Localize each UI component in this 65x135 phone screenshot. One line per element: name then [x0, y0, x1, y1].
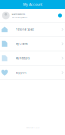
staticText: Personal Space	[15, 28, 33, 31]
staticText: My Claims	[15, 42, 27, 46]
staticText: My Receipts	[15, 56, 29, 60]
button[interactable]: My Receipts	[0, 51, 65, 65]
staticText: Support	[15, 71, 26, 74]
staticText: version 1.0.0	[26, 126, 39, 129]
button[interactable]: Personal Space	[0, 22, 65, 36]
button[interactable]: Support	[0, 66, 65, 80]
button[interactable]: My Claims	[0, 37, 65, 51]
staticText: Martin Smith	[12, 13, 25, 15]
button[interactable]: Martin Smith	[0, 9, 65, 22]
staticText: My Account	[23, 2, 42, 7]
staticText: martin.smith@mail.com	[12, 16, 27, 18]
